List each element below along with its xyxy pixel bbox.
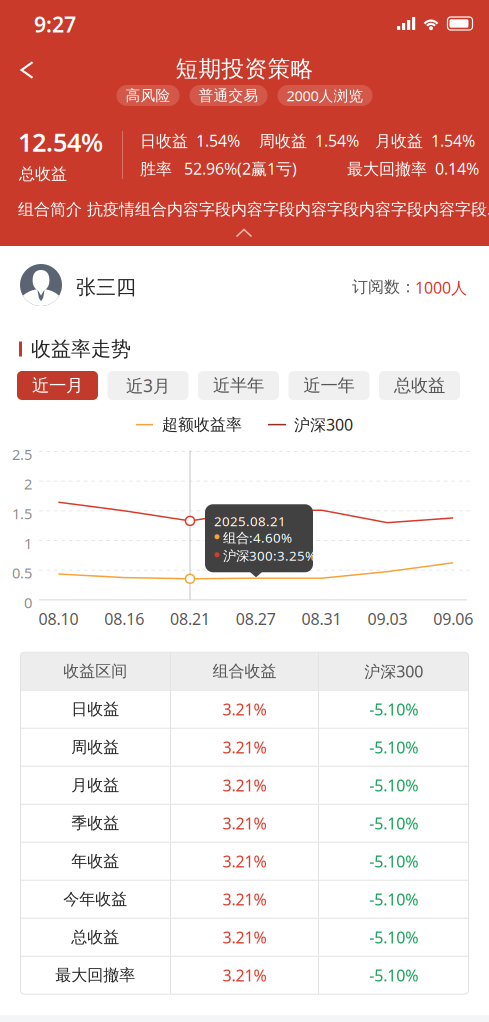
staticText: 09.03 bbox=[367, 608, 407, 629]
staticText: 3.21% bbox=[222, 699, 266, 720]
staticText: 张三四 bbox=[76, 275, 136, 300]
staticText: 月收益 bbox=[71, 775, 119, 795]
staticText: 3.21% bbox=[222, 775, 266, 796]
staticText: 1000人 bbox=[415, 277, 467, 298]
button[interactable]: 张三四 bbox=[0, 246, 489, 318]
staticText: 2000人浏览 bbox=[286, 86, 363, 105]
staticText: -5.10% bbox=[369, 927, 418, 948]
staticText: 9:27 bbox=[34, 10, 76, 38]
staticText: 08.10 bbox=[38, 608, 78, 629]
staticText: 08.16 bbox=[104, 608, 144, 629]
staticText: -5.10% bbox=[369, 737, 418, 758]
staticText: 近一年 bbox=[303, 375, 354, 396]
staticText: 日收益 1.54% bbox=[140, 130, 240, 151]
staticText: 3.21% bbox=[222, 737, 266, 758]
staticText: 0 bbox=[24, 593, 32, 612]
staticText: 年收益 bbox=[71, 851, 119, 871]
staticText: -5.10% bbox=[369, 813, 418, 834]
staticText: 总收益 bbox=[394, 375, 445, 396]
staticText: 沪深300 bbox=[364, 661, 423, 682]
staticText: -5.10% bbox=[369, 889, 418, 910]
staticText: 09.06 bbox=[433, 608, 473, 629]
staticText: 组合简介 抗疫情组合内容字段内容字段内容字段内容字段内容字段内容…… bbox=[18, 198, 489, 219]
staticText: 月收益 1.54% bbox=[375, 130, 475, 151]
staticText: 3.21% bbox=[222, 889, 266, 910]
button[interactable]: 总收益 bbox=[379, 371, 460, 400]
staticText: -5.10% bbox=[369, 699, 418, 720]
staticText: 超额收益率 bbox=[162, 415, 242, 434]
staticText: 最大回撤率 0.14% bbox=[347, 158, 479, 179]
staticText: 近一月 bbox=[32, 375, 83, 396]
staticText: 3.21% bbox=[222, 927, 266, 948]
staticText: 高风险 bbox=[125, 86, 170, 104]
button[interactable]: 近一年 bbox=[288, 371, 369, 400]
button[interactable]: Back bbox=[4, 50, 50, 90]
staticText: 0.5 bbox=[12, 563, 32, 583]
staticText: 胜率 52.96%(2赢1亏) bbox=[140, 158, 297, 179]
button[interactable]: 近3月 bbox=[107, 371, 188, 400]
staticText: 08.21 bbox=[170, 608, 210, 629]
staticText: 短期投资策略 bbox=[175, 55, 313, 83]
staticText: 组合:4.60% bbox=[223, 529, 292, 546]
staticText: 近半年 bbox=[213, 375, 264, 396]
staticText: 沪深300:3.25% bbox=[223, 547, 316, 564]
staticText: 1 bbox=[24, 533, 32, 553]
staticText: 3.21% bbox=[222, 851, 266, 872]
staticText: 周收益 1.54% bbox=[259, 130, 359, 151]
staticText: 最大回撤率 bbox=[55, 965, 135, 985]
button[interactable]: Collapse bbox=[214, 222, 274, 244]
staticText: 12.54% bbox=[18, 125, 103, 159]
staticText: 08.27 bbox=[236, 608, 276, 629]
staticText: 总收益 bbox=[71, 927, 119, 947]
staticText: 2 bbox=[24, 474, 32, 494]
staticText: 普通交易 bbox=[198, 86, 258, 104]
staticText: 组合收益 bbox=[212, 661, 276, 681]
staticText: 08.31 bbox=[302, 608, 342, 629]
button[interactable]: 近一月 bbox=[17, 371, 98, 400]
staticText: 季收益 bbox=[71, 813, 119, 833]
staticText: 2.5 bbox=[12, 444, 32, 464]
staticText: 近3月 bbox=[126, 374, 170, 397]
button[interactable]: 近半年 bbox=[198, 371, 279, 400]
staticText: 订阅数： bbox=[352, 277, 416, 297]
staticText: 3.21% bbox=[222, 965, 266, 986]
staticText: 周收益 bbox=[71, 737, 119, 757]
staticText: 沪深300 bbox=[294, 414, 353, 435]
staticText: -5.10% bbox=[369, 965, 418, 986]
staticText: 1.5 bbox=[12, 504, 32, 523]
staticText: 3.21% bbox=[222, 813, 266, 834]
staticText: 总收益 bbox=[19, 164, 67, 184]
staticText: 日收益 bbox=[71, 699, 119, 719]
staticText: 今年收益 bbox=[63, 889, 127, 909]
staticText: 2025.08.21 bbox=[214, 512, 286, 530]
staticText: -5.10% bbox=[369, 851, 418, 872]
staticText: 收益率走势 bbox=[31, 337, 131, 361]
staticText: 收益区间 bbox=[63, 661, 127, 681]
staticText: -5.10% bbox=[369, 775, 418, 796]
